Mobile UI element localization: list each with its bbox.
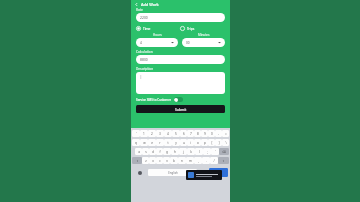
- button[interactable]: j: [179, 148, 187, 155]
- button[interactable]: o: [194, 139, 201, 146]
- button[interactable]: -: [215, 130, 222, 137]
- staticText: d: [152, 150, 154, 154]
- staticText: ⌫: [222, 150, 226, 153]
- button[interactable]: =: [222, 130, 229, 137]
- button[interactable]: Emoji: [133, 168, 146, 177]
- staticText: q: [135, 141, 137, 145]
- staticText: .: [206, 159, 207, 163]
- staticText: m: [189, 159, 192, 163]
- staticText: j: [183, 150, 184, 154]
- button[interactable]: 7: [187, 130, 194, 137]
- button[interactable]: 8800: [136, 55, 225, 64]
- button[interactable]: 5: [172, 130, 180, 137]
- button[interactable]: 4: [164, 130, 172, 137]
- button[interactable]: ;: [203, 148, 211, 155]
- staticText: o: [197, 141, 199, 145]
- button[interactable]: b: [170, 157, 178, 164]
- button[interactable]: [: [208, 139, 215, 146]
- button[interactable]: 00: [182, 38, 225, 47]
- button[interactable]: Trips: [180, 26, 195, 31]
- button[interactable]: 9: [201, 130, 208, 137]
- button[interactable]: u: [180, 139, 187, 146]
- button[interactable]: d: [149, 148, 156, 155]
- button[interactable]: Service SMS to Customer: [136, 97, 225, 102]
- button[interactable]: q: [132, 139, 140, 146]
- button[interactable]: 8: [194, 130, 201, 137]
- button[interactable]: Time: [136, 26, 151, 31]
- staticText: z: [145, 159, 147, 163]
- button[interactable]: m: [186, 157, 194, 164]
- button[interactable]: 6: [180, 130, 187, 137]
- button[interactable]: f: [156, 148, 163, 155]
- staticText: v: [166, 159, 168, 163]
- staticText: Service SMS to Customer: [136, 98, 172, 102]
- staticText: 9: [204, 132, 206, 136]
- button[interactable]: a: [135, 148, 142, 155]
- staticText: ]: [218, 141, 220, 145]
- button[interactable]: c: [156, 157, 163, 164]
- button[interactable]: 2200: [136, 13, 225, 22]
- staticText: a: [138, 150, 140, 154]
- button[interactable]: s: [142, 148, 149, 155]
- button[interactable]: ⌫: [219, 148, 229, 155]
- button[interactable]: t: [164, 139, 172, 146]
- staticText: 3: [159, 132, 161, 136]
- button[interactable]: p: [201, 139, 208, 146]
- button[interactable]: ': [132, 130, 140, 137]
- staticText: u: [183, 141, 185, 145]
- button[interactable]: g: [163, 148, 171, 155]
- staticText: Calculation: [136, 50, 153, 54]
- staticText: r: [159, 141, 161, 145]
- button[interactable]: 4: [136, 38, 178, 47]
- button[interactable]: ⇧: [132, 157, 142, 164]
- button[interactable]: |: [136, 72, 225, 94]
- button[interactable]: k: [187, 148, 195, 155]
- button[interactable]: ⇧: [218, 157, 229, 164]
- staticText: ↵: [217, 171, 220, 175]
- staticText: 00: [186, 41, 190, 45]
- staticText: ,: [198, 159, 199, 163]
- button[interactable]: 1: [140, 130, 148, 137]
- staticText: ': [136, 132, 137, 136]
- staticText: ;: [207, 150, 208, 154]
- staticText: 2200: [140, 15, 148, 20]
- staticText: 6: [183, 132, 185, 136]
- button[interactable]: 2: [148, 130, 156, 137]
- button[interactable]: /: [210, 157, 218, 164]
- button[interactable]: n: [178, 157, 186, 164]
- staticText: English: [168, 171, 178, 175]
- button[interactable]: w: [140, 139, 148, 146]
- button[interactable]: 0: [208, 130, 215, 137]
- staticText: y: [175, 141, 177, 145]
- staticText: Hours: [153, 33, 162, 37]
- staticText: 8800: [140, 57, 148, 62]
- button[interactable]: ,: [194, 157, 202, 164]
- button[interactable]: x: [149, 157, 156, 164]
- staticText: [: [211, 141, 213, 145]
- staticText: Submit: [175, 107, 187, 112]
- staticText: l: [199, 150, 200, 154]
- staticText: ': [215, 150, 216, 154]
- button[interactable]: Submit: [136, 105, 225, 113]
- button[interactable]: ': [211, 148, 219, 155]
- button[interactable]: l: [195, 148, 203, 155]
- staticText: n: [181, 159, 183, 163]
- button[interactable]: v: [163, 157, 170, 164]
- staticText: k: [190, 150, 192, 154]
- button[interactable]: .: [202, 157, 210, 164]
- button[interactable]: z: [142, 157, 149, 164]
- button[interactable]: y: [172, 139, 180, 146]
- button[interactable]: 3: [156, 130, 164, 137]
- button[interactable]: Back: [133, 1, 139, 7]
- button[interactable]: e: [148, 139, 156, 146]
- button[interactable]: English: [148, 169, 197, 176]
- button[interactable]: r: [156, 139, 164, 146]
- staticText: c: [159, 159, 161, 163]
- button[interactable]: Enter: [209, 168, 228, 177]
- button[interactable]: h: [171, 148, 179, 155]
- button[interactable]: i: [187, 139, 194, 146]
- button[interactable]: ]: [215, 139, 222, 146]
- button[interactable]: \: [222, 139, 229, 146]
- staticText: 8: [197, 132, 199, 136]
- button[interactable]: [186, 170, 222, 180]
